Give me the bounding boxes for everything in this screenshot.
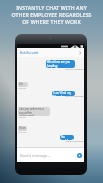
staticText: OTHER EMPLOYEE REGARDLESS [11, 11, 92, 18]
button[interactable]: I can't find my Erlang! [52, 91, 75, 96]
staticText: 7:46 PM Delivered [65, 68, 84, 71]
button[interactable]: What time are you heading in also? [46, 60, 75, 68]
staticText: No problem! [61, 135, 73, 140]
staticText: 7:46 PM [18, 131, 26, 134]
staticText: 7:46 PM [18, 116, 26, 119]
other: Contact details [78, 51, 82, 55]
staticText: Bob Burundi [20, 51, 39, 55]
button[interactable]: No problem! [60, 135, 74, 140]
staticText: Thanks [19, 126, 26, 131]
button[interactable]: Can you order me a cup coffee just in ca… [18, 107, 50, 116]
button[interactable]: Thanks [18, 126, 27, 131]
staticText: 7:46 PM Delivered [65, 140, 84, 143]
staticText: I'm late [19, 82, 27, 87]
button[interactable]: Send [77, 153, 82, 158]
staticText: Can you order me a cup coffee just in ca… [19, 107, 49, 116]
staticText: OF WHERE THEY WORK [22, 18, 81, 25]
staticText: I can't find my Erlang! [53, 91, 74, 96]
button[interactable]: I'm late [18, 82, 28, 87]
staticText: What time are you heading in also? [47, 60, 74, 68]
staticText: 7:46 PM Delivered [65, 95, 84, 98]
staticText: INSTANTLY CHAT WITH ANY [16, 4, 87, 11]
staticText: Send a message... [20, 153, 51, 158]
button[interactable]: Bob Burundi [17, 48, 84, 57]
staticText: 7:46 PM [18, 87, 26, 90]
